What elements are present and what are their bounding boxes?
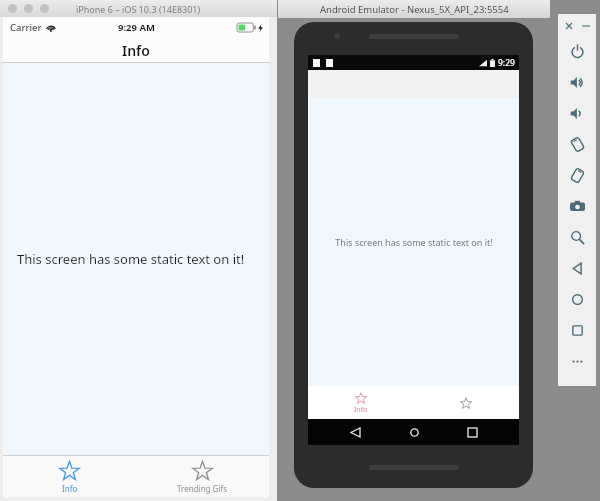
- button[interactable]: Power: [558, 36, 596, 67]
- button[interactable]: Back: [344, 421, 366, 443]
- staticText: Info: [122, 41, 150, 60]
- staticText: This screen has some static text on it!: [17, 250, 245, 268]
- button[interactable]: Close: [562, 19, 575, 32]
- button[interactable]: Take screenshot: [558, 191, 596, 222]
- button[interactable]: Volume down: [558, 98, 596, 129]
- button[interactable]: Rotate right: [558, 160, 596, 191]
- staticText: Trending Gifs: [177, 483, 228, 494]
- staticText: Info: [62, 483, 78, 494]
- button[interactable]: Home: [558, 284, 596, 315]
- button[interactable]: Minimize: [579, 19, 592, 32]
- staticText: This screen has some static text on it!: [335, 236, 493, 248]
- button[interactable]: Window control: [8, 4, 17, 13]
- button[interactable]: Window control: [24, 4, 33, 13]
- staticText: Android Emulator - Nexus_5X_API_23:5554: [320, 3, 509, 16]
- button[interactable]: Zoom: [558, 222, 596, 253]
- button[interactable]: Window control: [40, 4, 49, 13]
- button[interactable]: Home: [403, 421, 425, 443]
- button[interactable]: Trending Gifs: [136, 455, 269, 497]
- button[interactable]: Volume up: [558, 67, 596, 98]
- button[interactable]: Recents: [461, 421, 483, 443]
- button[interactable]: Overview: [558, 315, 596, 346]
- button[interactable]: Info: [308, 386, 413, 419]
- button[interactable]: Trending Gifs: [413, 386, 519, 419]
- staticText: 9:29 AM: [118, 21, 155, 34]
- button[interactable]: Rotate left: [558, 129, 596, 160]
- button[interactable]: More: [558, 346, 596, 377]
- staticText: Carrier: [10, 21, 42, 34]
- staticText: 9:29: [498, 57, 515, 69]
- staticText: iPhone 6 – iOS 10.3 (14E8301): [76, 3, 201, 15]
- button[interactable]: Back: [558, 253, 596, 284]
- button[interactable]: Info: [3, 455, 136, 497]
- staticText: Info: [354, 405, 368, 415]
